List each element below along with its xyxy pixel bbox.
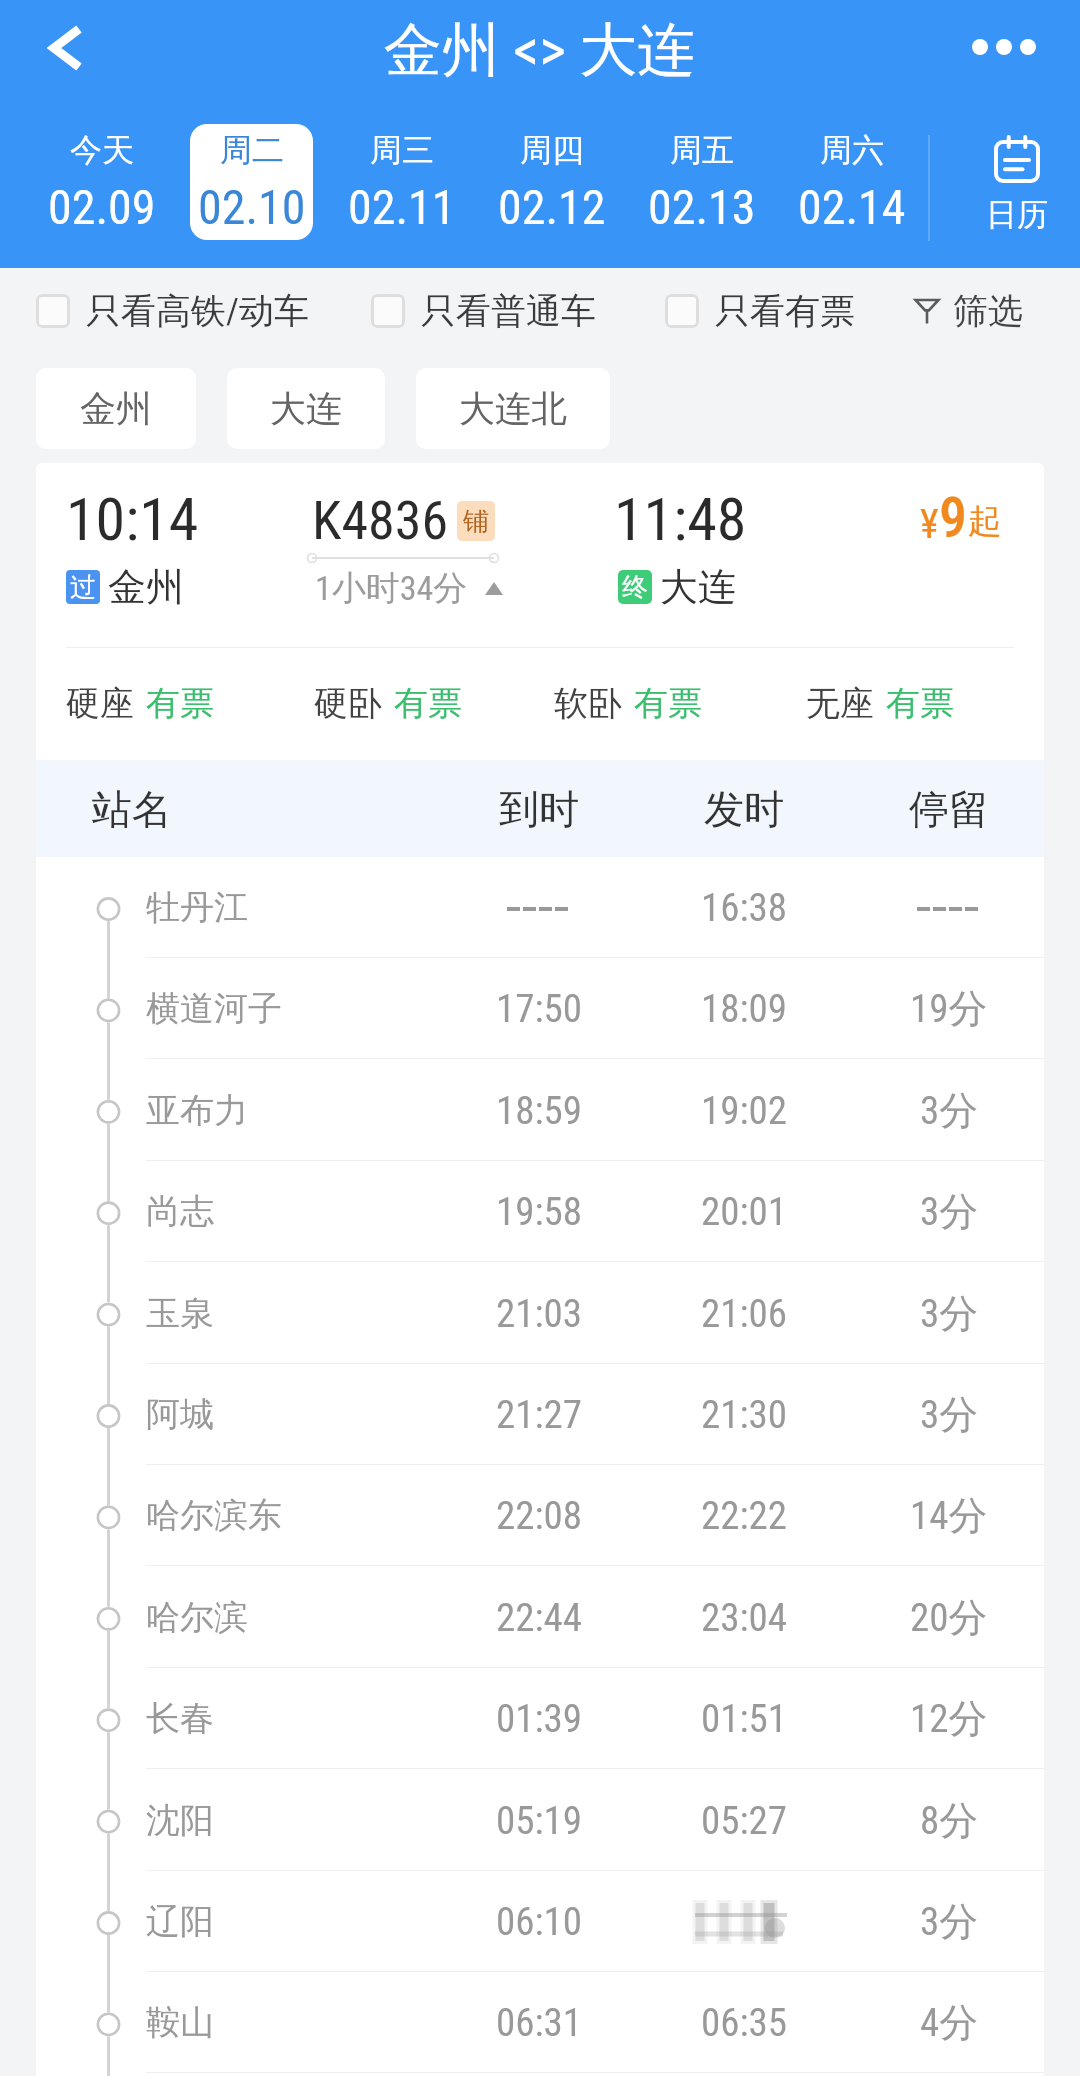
staticText: 周二	[220, 130, 284, 170]
staticText: 鞍山	[146, 2001, 214, 2044]
staticText: 尚志	[146, 1190, 214, 1233]
button[interactable]: 亚布力	[36, 1060, 1044, 1161]
staticText: 停留	[909, 784, 989, 834]
staticText: 21:03	[496, 1291, 583, 1337]
staticText: 19分	[910, 984, 988, 1033]
button[interactable]: 周二	[176, 110, 326, 268]
button[interactable]: 横道河子	[36, 958, 1044, 1059]
staticText: 玉泉	[146, 1292, 214, 1335]
staticText: 沈阳	[146, 1799, 214, 1842]
staticText: 02.12	[498, 179, 606, 235]
staticText: 只看普通车	[421, 289, 596, 333]
staticText: 3分	[920, 1289, 979, 1338]
button[interactable]: More options	[940, 0, 1080, 110]
button[interactable]: 周四	[476, 110, 626, 268]
button[interactable]: 只看有票	[665, 289, 855, 333]
staticText: 硬卧	[314, 682, 382, 725]
staticText: 今天	[70, 130, 134, 170]
staticText: 23:04	[701, 1595, 788, 1641]
button[interactable]: 长春	[36, 1668, 1044, 1769]
staticText: 02.14	[798, 179, 906, 235]
staticText: 20:01	[701, 1189, 788, 1235]
button[interactable]: 辽阳	[36, 1871, 1044, 1972]
staticText: 站名	[92, 784, 172, 834]
staticText: 12分	[910, 1694, 988, 1743]
staticText: 周五	[670, 130, 734, 170]
button[interactable]: 周三	[326, 110, 476, 268]
staticText: 有票	[146, 682, 214, 725]
button[interactable]: 大连	[227, 368, 385, 449]
staticText: 有票	[394, 682, 462, 725]
staticText: 亚布力	[146, 1089, 248, 1132]
staticText: 06:35	[701, 2000, 788, 2046]
staticText: 4分	[920, 1998, 979, 2047]
staticText: 终	[622, 571, 648, 604]
staticText: 19:58	[496, 1189, 583, 1235]
button[interactable]: Back	[0, 0, 130, 110]
button[interactable]: 周六	[776, 110, 926, 268]
button[interactable]: 今天	[26, 110, 176, 268]
staticText: 金州	[80, 386, 152, 431]
staticText: 硬座	[66, 682, 134, 725]
staticText: 06:10	[496, 1899, 583, 1945]
staticText: 01:39	[496, 1696, 583, 1742]
staticText: 筛选	[953, 289, 1023, 333]
button[interactable]: 哈尔滨	[36, 1567, 1044, 1668]
staticText: 3分	[920, 1390, 979, 1439]
staticText: 1小时34分	[315, 567, 468, 610]
staticText: 18:09	[701, 986, 788, 1032]
staticText: 8分	[920, 1796, 979, 1845]
staticText: 01:51	[701, 1696, 788, 1742]
button[interactable]: 只看高铁/动车	[36, 289, 309, 333]
staticText: 哈尔滨东	[146, 1494, 282, 1537]
staticText: 02.09	[48, 179, 156, 235]
button[interactable]: 筛选	[914, 289, 1080, 333]
button[interactable]: 只看普通车	[371, 289, 596, 333]
staticText: 3分	[920, 1187, 979, 1236]
staticText: 辽阳	[146, 1900, 214, 1943]
staticText: 哈尔滨	[146, 1596, 248, 1639]
staticText: 9	[939, 485, 968, 551]
button[interactable]: 尚志	[36, 1161, 1044, 1262]
button[interactable]: 牡丹江	[36, 857, 1044, 958]
staticText: 05:27	[701, 1798, 788, 1844]
staticText: 3分	[920, 1086, 979, 1135]
staticText: 大连	[270, 386, 342, 431]
staticText: 铺	[463, 505, 489, 538]
button[interactable]: 鞍山	[36, 1972, 1044, 2073]
staticText: 周三	[370, 130, 434, 170]
button[interactable]: 阿城	[36, 1364, 1044, 1465]
staticText: 02.10	[198, 179, 306, 235]
staticText: 软卧	[554, 682, 622, 725]
button[interactable]: 10:14	[36, 463, 1044, 760]
staticText: 阿城	[146, 1393, 214, 1436]
staticText: 21:30	[701, 1392, 788, 1438]
staticText: 只看高铁/动车	[86, 289, 309, 333]
staticText: 长春	[146, 1697, 214, 1740]
staticText: 过	[70, 571, 96, 604]
staticText: 大连北	[459, 386, 567, 431]
staticText: 18:59	[496, 1088, 583, 1134]
staticText: 21:27	[496, 1392, 583, 1438]
button[interactable]: 沈阳	[36, 1770, 1044, 1871]
button[interactable]: 哈尔滨东	[36, 1465, 1044, 1566]
staticText: 金州	[108, 563, 184, 611]
button[interactable]: 大连北	[416, 368, 610, 449]
staticText: 只看有票	[715, 289, 855, 333]
staticText: 11:48	[614, 484, 747, 554]
button[interactable]: 日历 Open calendar	[940, 110, 1080, 268]
staticText: 有票	[634, 682, 702, 725]
staticText: 横道河子	[146, 987, 282, 1030]
staticText: 大连	[660, 563, 736, 611]
staticText: 16:38	[701, 885, 788, 931]
button[interactable]: 金州	[36, 368, 196, 449]
staticText: 起	[968, 500, 1002, 543]
staticText: 3分	[920, 1897, 979, 1946]
button[interactable]: 玉泉	[36, 1263, 1044, 1364]
staticText: 10:14	[66, 484, 199, 554]
staticText: 02.11	[348, 179, 456, 235]
staticText: 22:08	[496, 1493, 583, 1539]
staticText: 21:06	[701, 1291, 788, 1337]
button[interactable]: 周五	[626, 110, 776, 268]
